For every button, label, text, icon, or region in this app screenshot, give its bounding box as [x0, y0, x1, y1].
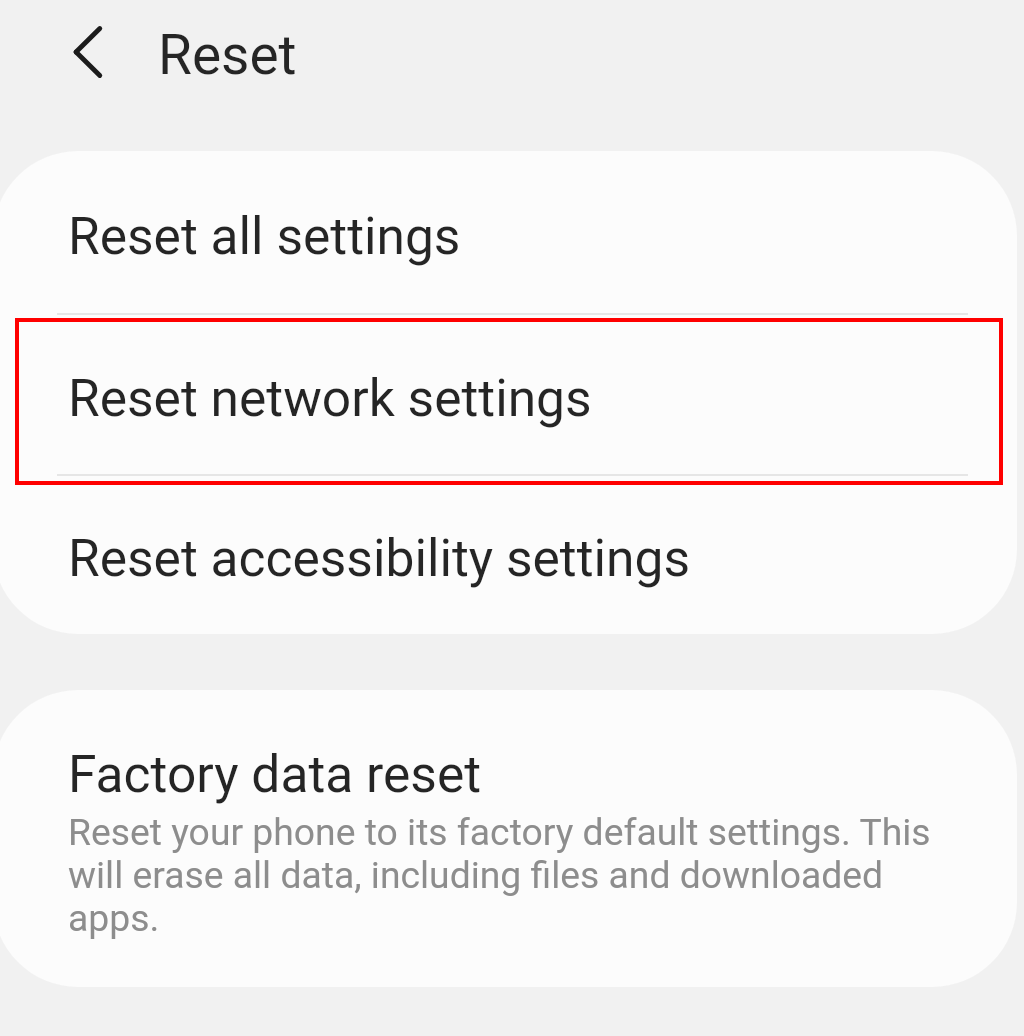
staticText: Reset	[158, 23, 297, 87]
staticText: Factory data reset	[68, 744, 482, 804]
staticText: Reset all settings	[68, 206, 461, 266]
button[interactable]: Navigate up	[53, 8, 125, 96]
button[interactable]: Reset network settings	[0, 314, 1017, 475]
staticText: Reset your phone to its factory default …	[68, 810, 980, 940]
button[interactable]: Reset all settings	[0, 151, 1017, 314]
staticText: Reset accessibility settings	[68, 528, 690, 588]
button[interactable]: Factory data reset	[0, 690, 1017, 987]
staticText: Reset network settings	[68, 368, 592, 428]
button[interactable]: Reset accessibility settings	[0, 475, 1017, 634]
